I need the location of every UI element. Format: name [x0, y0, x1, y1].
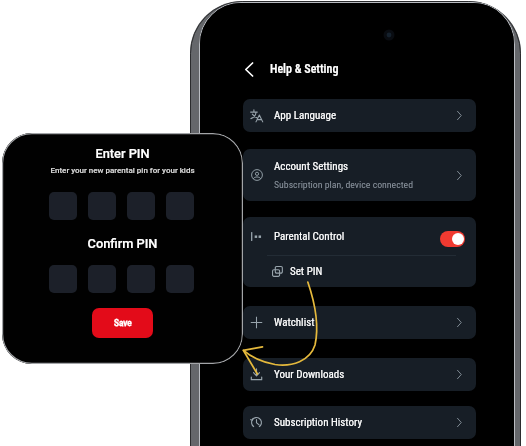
button[interactable]: PIN digit — [166, 192, 194, 220]
staticText: Subscription plan, device connected — [274, 179, 414, 190]
button[interactable]: Parental Control — [243, 217, 476, 255]
button[interactable]: PIN digit — [88, 265, 116, 293]
staticText: Set PIN — [290, 265, 323, 278]
button[interactable]: PIN digit — [49, 192, 77, 220]
button[interactable]: Save — [92, 308, 153, 338]
staticText: App Language — [274, 109, 337, 122]
staticText: Confirm PIN — [2, 236, 243, 251]
button[interactable]: Your Downloads — [243, 358, 476, 391]
button[interactable]: Toggle parental control — [440, 231, 465, 247]
staticText: Parental Control — [274, 230, 345, 243]
button[interactable]: PIN digit — [166, 265, 194, 293]
button[interactable]: Account Settings — [243, 149, 476, 201]
staticText: Watchlist — [274, 316, 315, 329]
button[interactable]: Back — [239, 56, 339, 82]
button[interactable]: PIN digit — [49, 265, 77, 293]
staticText: Save — [114, 318, 132, 328]
button[interactable]: PIN digit — [88, 192, 116, 220]
staticText: Enter your new parental pin for your kid… — [2, 166, 243, 175]
button[interactable]: Back — [239, 59, 259, 79]
staticText: Subscription History — [274, 416, 363, 429]
staticText: Enter PIN — [2, 146, 243, 161]
button[interactable]: PIN digit — [127, 192, 155, 220]
button[interactable]: Watchlist — [243, 306, 476, 339]
button[interactable]: Subscription History — [243, 406, 476, 439]
staticText: Account Settings — [274, 160, 349, 173]
button[interactable]: Set PIN — [243, 256, 476, 287]
button[interactable]: PIN digit — [127, 265, 155, 293]
staticText: Help & Setting — [270, 62, 339, 76]
staticText: Your Downloads — [274, 368, 345, 381]
button[interactable]: App Language — [243, 99, 476, 132]
